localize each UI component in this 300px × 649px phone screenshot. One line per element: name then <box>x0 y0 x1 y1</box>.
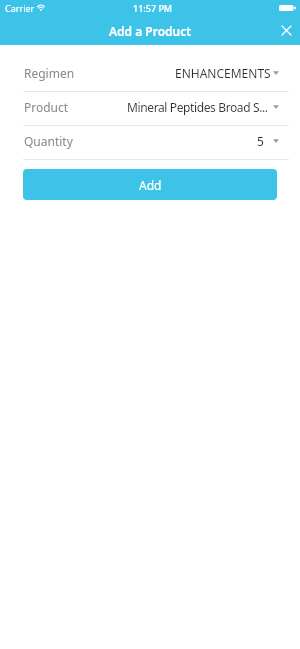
staticText: Product <box>24 99 69 115</box>
staticText: Add <box>139 177 162 193</box>
button[interactable]: Close <box>273 18 299 44</box>
button[interactable]: Product <box>0 92 300 125</box>
staticText: ENHANCEMENTS <box>175 65 271 81</box>
staticText: Carrier <box>5 2 35 14</box>
staticText: Quantity <box>24 133 73 149</box>
staticText: 5 <box>257 133 264 149</box>
button[interactable]: Quantity <box>0 126 300 159</box>
staticText: Mineral Peptides Broad S... <box>127 99 268 115</box>
staticText: Regimen <box>24 65 75 81</box>
button[interactable]: Regimen <box>0 58 300 91</box>
staticText: 11:57 PM <box>133 2 173 14</box>
staticText: Add a Product <box>109 23 192 39</box>
button[interactable]: Add <box>23 169 277 200</box>
